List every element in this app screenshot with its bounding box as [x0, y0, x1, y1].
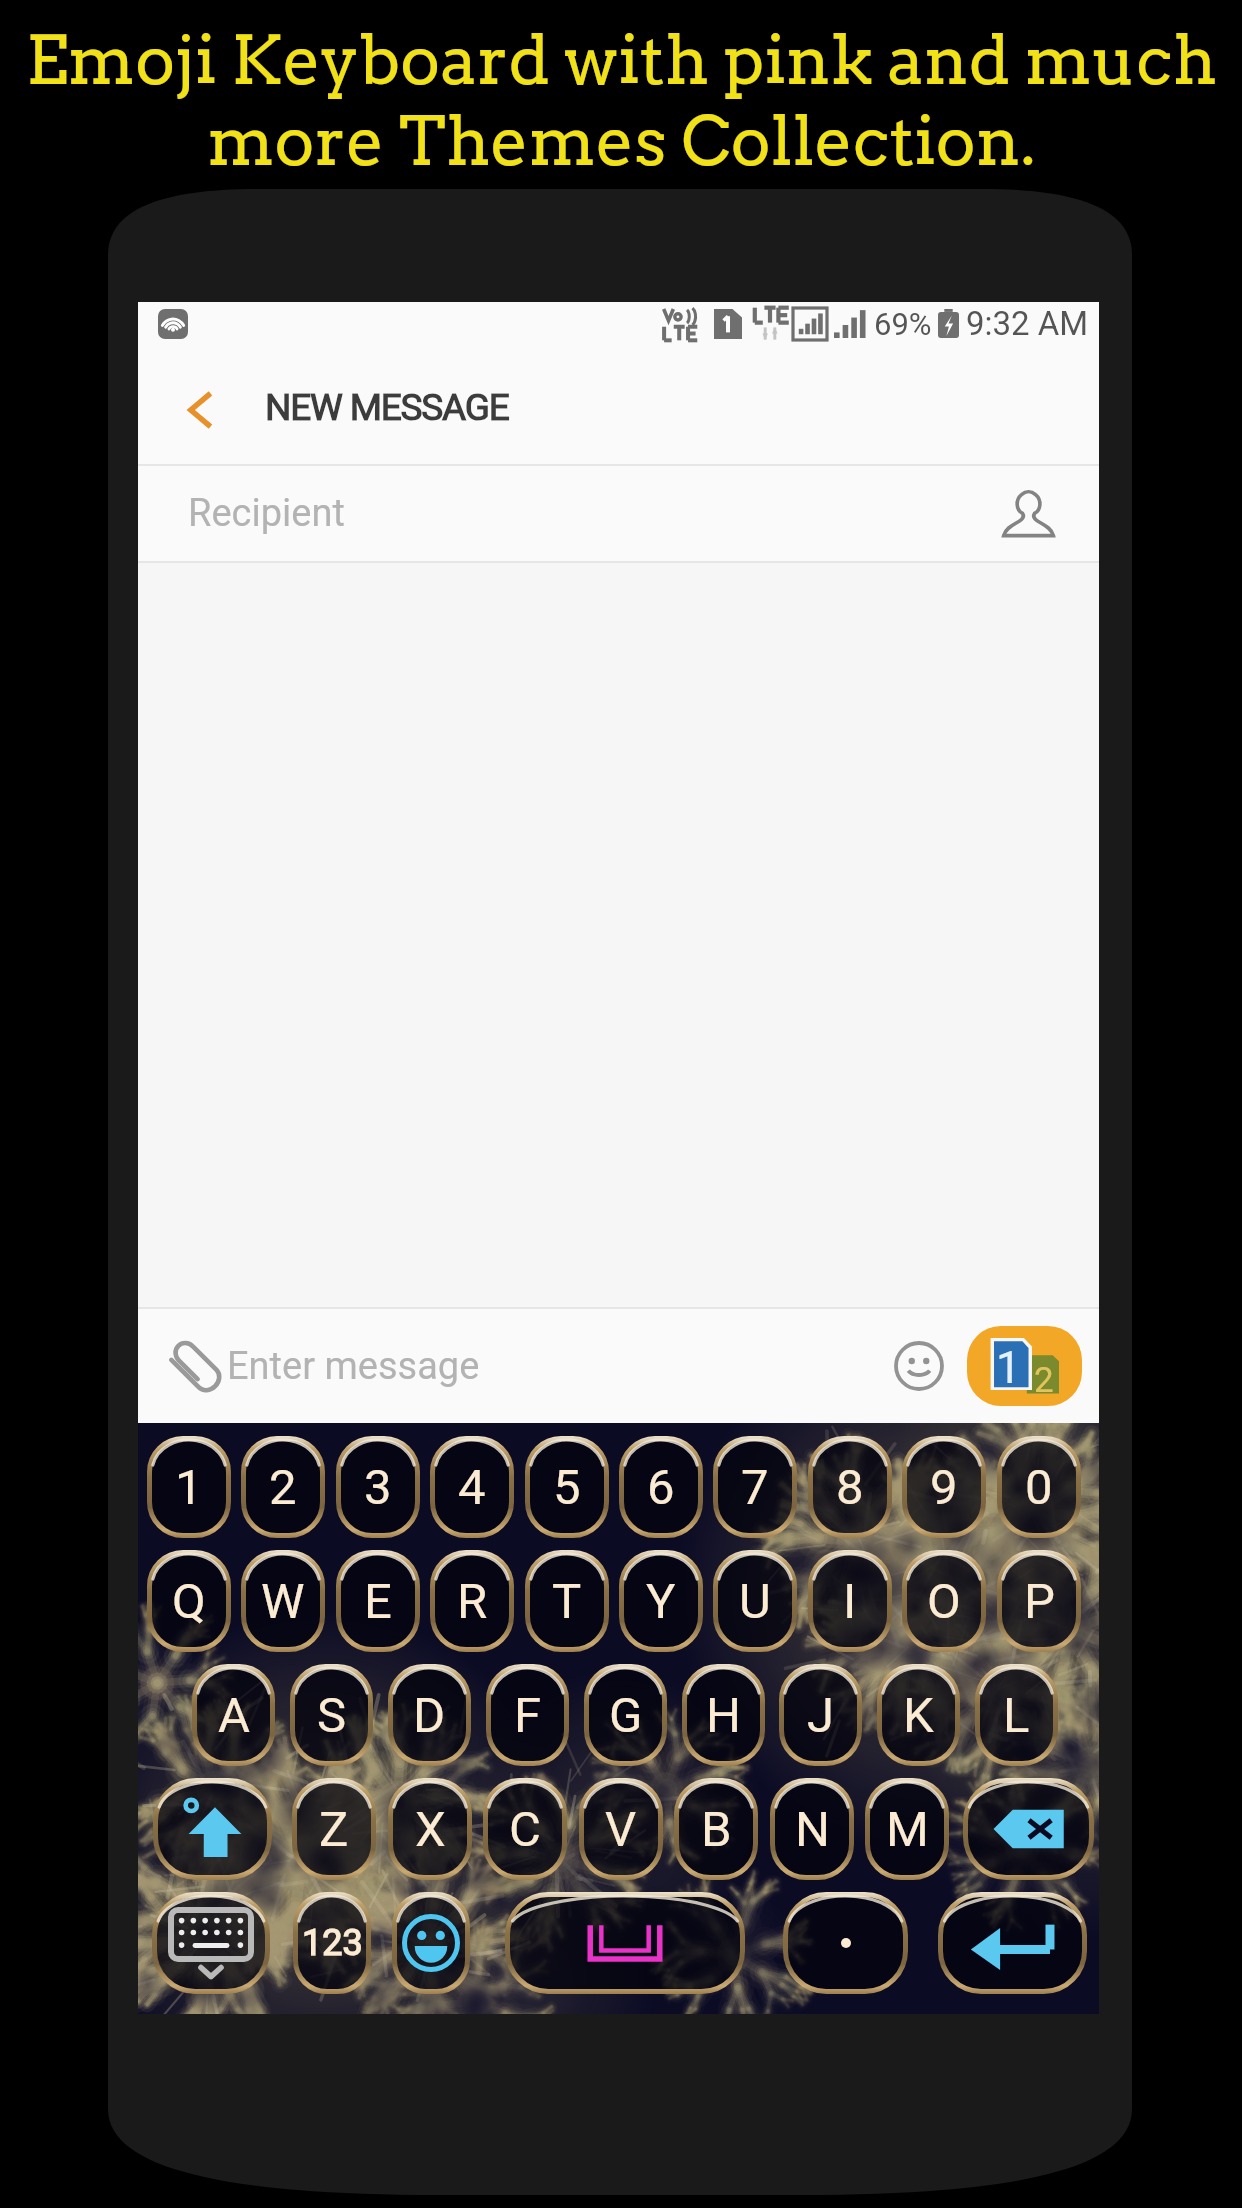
staticText: 6	[647, 1459, 675, 1516]
button[interactable]: 0	[997, 1436, 1081, 1538]
staticText: N	[795, 1801, 830, 1858]
button[interactable]: R	[430, 1550, 514, 1652]
staticText: G	[609, 1687, 643, 1744]
staticText: E	[364, 1573, 392, 1630]
button[interactable]: Send message with SIM 1	[967, 1326, 1082, 1406]
staticText: O	[927, 1573, 961, 1630]
button[interactable]: C	[483, 1778, 567, 1880]
button[interactable]: 123	[293, 1892, 371, 1994]
button[interactable]: Backspace	[963, 1778, 1094, 1880]
staticText: 2	[1034, 1360, 1054, 1401]
staticText: 7	[741, 1459, 769, 1516]
button[interactable]: O	[902, 1550, 986, 1652]
staticText: 0	[1025, 1459, 1053, 1516]
button[interactable]: W	[241, 1550, 325, 1652]
button[interactable]: 1	[147, 1436, 231, 1538]
button[interactable]: Shift	[153, 1778, 272, 1880]
staticText: Emoji Keyboard with pink and much	[26, 20, 1217, 101]
button[interactable]: Back	[178, 382, 230, 438]
button[interactable]: Recipient	[138, 466, 1099, 561]
staticText: 9:32 AM	[966, 304, 1089, 343]
button[interactable]: B	[674, 1778, 758, 1880]
staticText: W	[261, 1573, 305, 1630]
staticText: 123	[302, 1922, 363, 1964]
staticText: Q	[172, 1573, 206, 1630]
staticText: X	[415, 1801, 446, 1858]
staticText: 69%	[874, 306, 932, 342]
button[interactable]: K	[877, 1664, 960, 1766]
staticText: M	[886, 1801, 929, 1858]
staticText: 3	[364, 1459, 392, 1516]
staticText: 5	[553, 1459, 581, 1516]
button[interactable]: G	[584, 1664, 667, 1766]
staticText: NEW MESSAGE	[265, 386, 509, 429]
staticText: 4	[458, 1459, 486, 1516]
staticText: C	[509, 1801, 541, 1858]
staticText: T	[552, 1573, 582, 1630]
button[interactable]: F	[486, 1664, 569, 1766]
staticText: F	[514, 1687, 542, 1744]
button[interactable]: L	[975, 1664, 1058, 1766]
staticText: 9	[930, 1459, 958, 1516]
button[interactable]: Hide keyboard	[152, 1892, 270, 1994]
button[interactable]: Attach file	[164, 1335, 226, 1397]
staticText: Enter message	[227, 1344, 480, 1389]
button[interactable]: X	[388, 1778, 472, 1880]
staticText: more Themes Collection.	[207, 101, 1036, 182]
button[interactable]: D	[388, 1664, 471, 1766]
button[interactable]: T	[525, 1550, 609, 1652]
staticText: I	[843, 1573, 857, 1630]
button[interactable]: 7	[713, 1436, 797, 1538]
button[interactable]: A	[192, 1664, 275, 1766]
staticText: 8	[836, 1459, 864, 1516]
staticText: S	[317, 1687, 347, 1744]
staticText: K	[903, 1687, 934, 1744]
staticText: Y	[646, 1573, 676, 1630]
staticText: U	[739, 1573, 771, 1630]
button[interactable]: H	[682, 1664, 765, 1766]
button[interactable]: Choose contact	[1001, 487, 1055, 541]
button[interactable]: Period	[783, 1892, 908, 1994]
staticText: L	[1003, 1687, 1030, 1744]
staticText: 1	[996, 1342, 1021, 1394]
button[interactable]: I	[808, 1550, 892, 1652]
button[interactable]: 3	[336, 1436, 420, 1538]
button[interactable]: V	[579, 1778, 663, 1880]
staticText: Z	[319, 1801, 349, 1858]
staticText: H	[706, 1687, 741, 1744]
button[interactable]: E	[336, 1550, 420, 1652]
button[interactable]: Enter	[938, 1892, 1087, 1994]
staticText: B	[701, 1801, 732, 1858]
button[interactable]: Space	[505, 1892, 745, 1994]
button[interactable]: Insert emoji	[894, 1341, 944, 1391]
staticText: D	[413, 1687, 446, 1744]
staticText: Recipient	[188, 491, 345, 536]
staticText: 1	[175, 1459, 203, 1516]
button[interactable]: 5	[525, 1436, 609, 1538]
button[interactable]: 4	[430, 1436, 514, 1538]
button[interactable]: U	[713, 1550, 797, 1652]
button[interactable]: Emoji	[392, 1892, 470, 1994]
button[interactable]: P	[997, 1550, 1081, 1652]
button[interactable]: S	[290, 1664, 373, 1766]
button[interactable]: 8	[808, 1436, 892, 1538]
button[interactable]: Y	[619, 1550, 703, 1652]
button[interactable]: Q	[147, 1550, 231, 1652]
button[interactable]: Z	[292, 1778, 376, 1880]
staticText: J	[807, 1687, 835, 1744]
button[interactable]: M	[865, 1778, 949, 1880]
staticText: A	[218, 1687, 250, 1744]
button[interactable]: J	[779, 1664, 862, 1766]
button[interactable]: N	[770, 1778, 854, 1880]
staticText: R	[457, 1573, 488, 1630]
button[interactable]: 2	[241, 1436, 325, 1538]
staticText: 2	[269, 1459, 297, 1516]
button[interactable]: 6	[619, 1436, 703, 1538]
staticText: V	[605, 1801, 637, 1858]
staticText: P	[1024, 1573, 1055, 1630]
button[interactable]: 9	[902, 1436, 986, 1538]
